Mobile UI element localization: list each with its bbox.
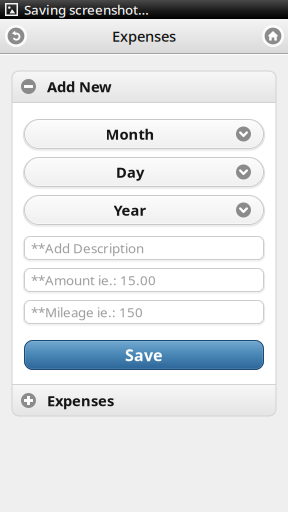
staticText: **Mileage ie.: 150 [31,303,143,321]
staticText: Add New [47,77,112,96]
staticText: Month [105,124,154,144]
button[interactable]: Day [24,157,264,187]
button[interactable]: Add New [12,71,276,102]
staticText: Day [116,162,144,182]
staticText: Year [113,200,146,220]
button[interactable]: **Add Description [24,236,264,260]
button[interactable]: Expenses [12,385,276,416]
button[interactable]: Month [24,119,264,149]
button[interactable]: **Mileage ie.: 150 [24,300,264,324]
staticText: Expenses [112,26,176,46]
staticText: Saving screenshot… [24,1,149,18]
button[interactable]: Year [24,195,264,225]
staticText: **Amount ie.: 15.00 [31,271,156,289]
button[interactable]: Home [255,19,288,53]
button[interactable]: **Amount ie.: 15.00 [24,268,264,292]
staticText: Save [125,344,163,366]
staticText: Expenses [47,391,114,410]
button[interactable]: Save [24,340,264,370]
button[interactable]: Back [0,19,34,53]
staticText: **Add Description [31,239,144,257]
